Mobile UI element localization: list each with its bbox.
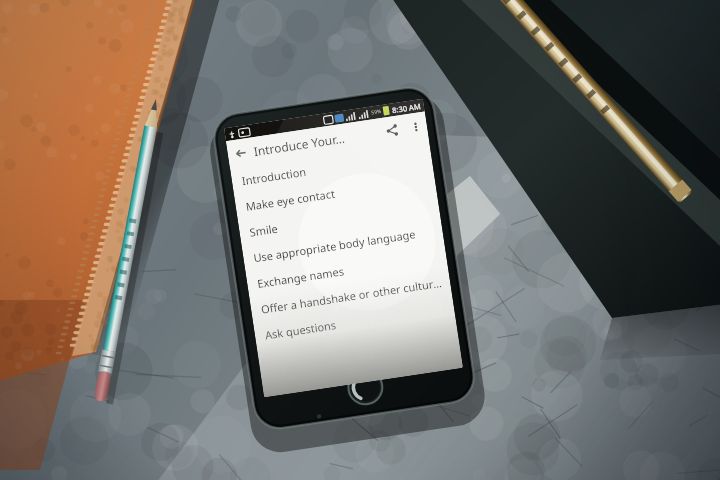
staticText: Introduce Your… bbox=[252, 130, 346, 159]
button[interactable]: Ask questions bbox=[253, 293, 456, 349]
staticText: Offer a handshake or other culturally… bbox=[260, 275, 445, 317]
staticText: Use appropriate body language bbox=[252, 226, 417, 265]
button[interactable]: Smile bbox=[238, 191, 440, 246]
staticText: 8:30 AM bbox=[391, 101, 422, 115]
button[interactable]: Make eye contact bbox=[234, 165, 436, 220]
button[interactable]: More options bbox=[403, 114, 428, 139]
staticText: 59% bbox=[371, 108, 382, 116]
button[interactable]: Use appropriate body language bbox=[242, 216, 444, 272]
staticText: Smile bbox=[248, 220, 279, 240]
button[interactable]: Exchange names bbox=[245, 242, 448, 297]
staticText: Exchange names bbox=[256, 263, 345, 291]
staticText: Ask questions bbox=[264, 317, 337, 342]
staticText: Make eye contact bbox=[245, 186, 336, 214]
staticText: Introduction bbox=[241, 164, 307, 188]
button[interactable]: Back bbox=[226, 138, 256, 168]
button[interactable]: Share bbox=[377, 116, 407, 145]
button[interactable]: Introduction bbox=[230, 139, 433, 195]
button[interactable]: Offer a handshake or other culturally… bbox=[249, 268, 452, 323]
